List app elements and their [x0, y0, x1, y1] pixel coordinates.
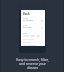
button[interactable]: [23, 39, 43, 41]
staticText: Any class: [23, 26, 41, 29]
staticText: All studios: [23, 19, 41, 22]
button[interactable]: Class: [23, 24, 43, 30]
staticText: Studio: [23, 17, 29, 19]
other: Expand: [41, 20, 43, 22]
button[interactable]: [23, 42, 43, 44]
button[interactable]: [23, 45, 43, 46]
other: Expand: [41, 27, 43, 29]
staticText: Book: [23, 12, 30, 16]
staticText: Date: [23, 32, 27, 34]
staticText: Class: [23, 24, 28, 26]
button[interactable]: Studio: [23, 17, 43, 23]
staticText: Easy to search, filter, and reserve your…: [16, 57, 49, 70]
